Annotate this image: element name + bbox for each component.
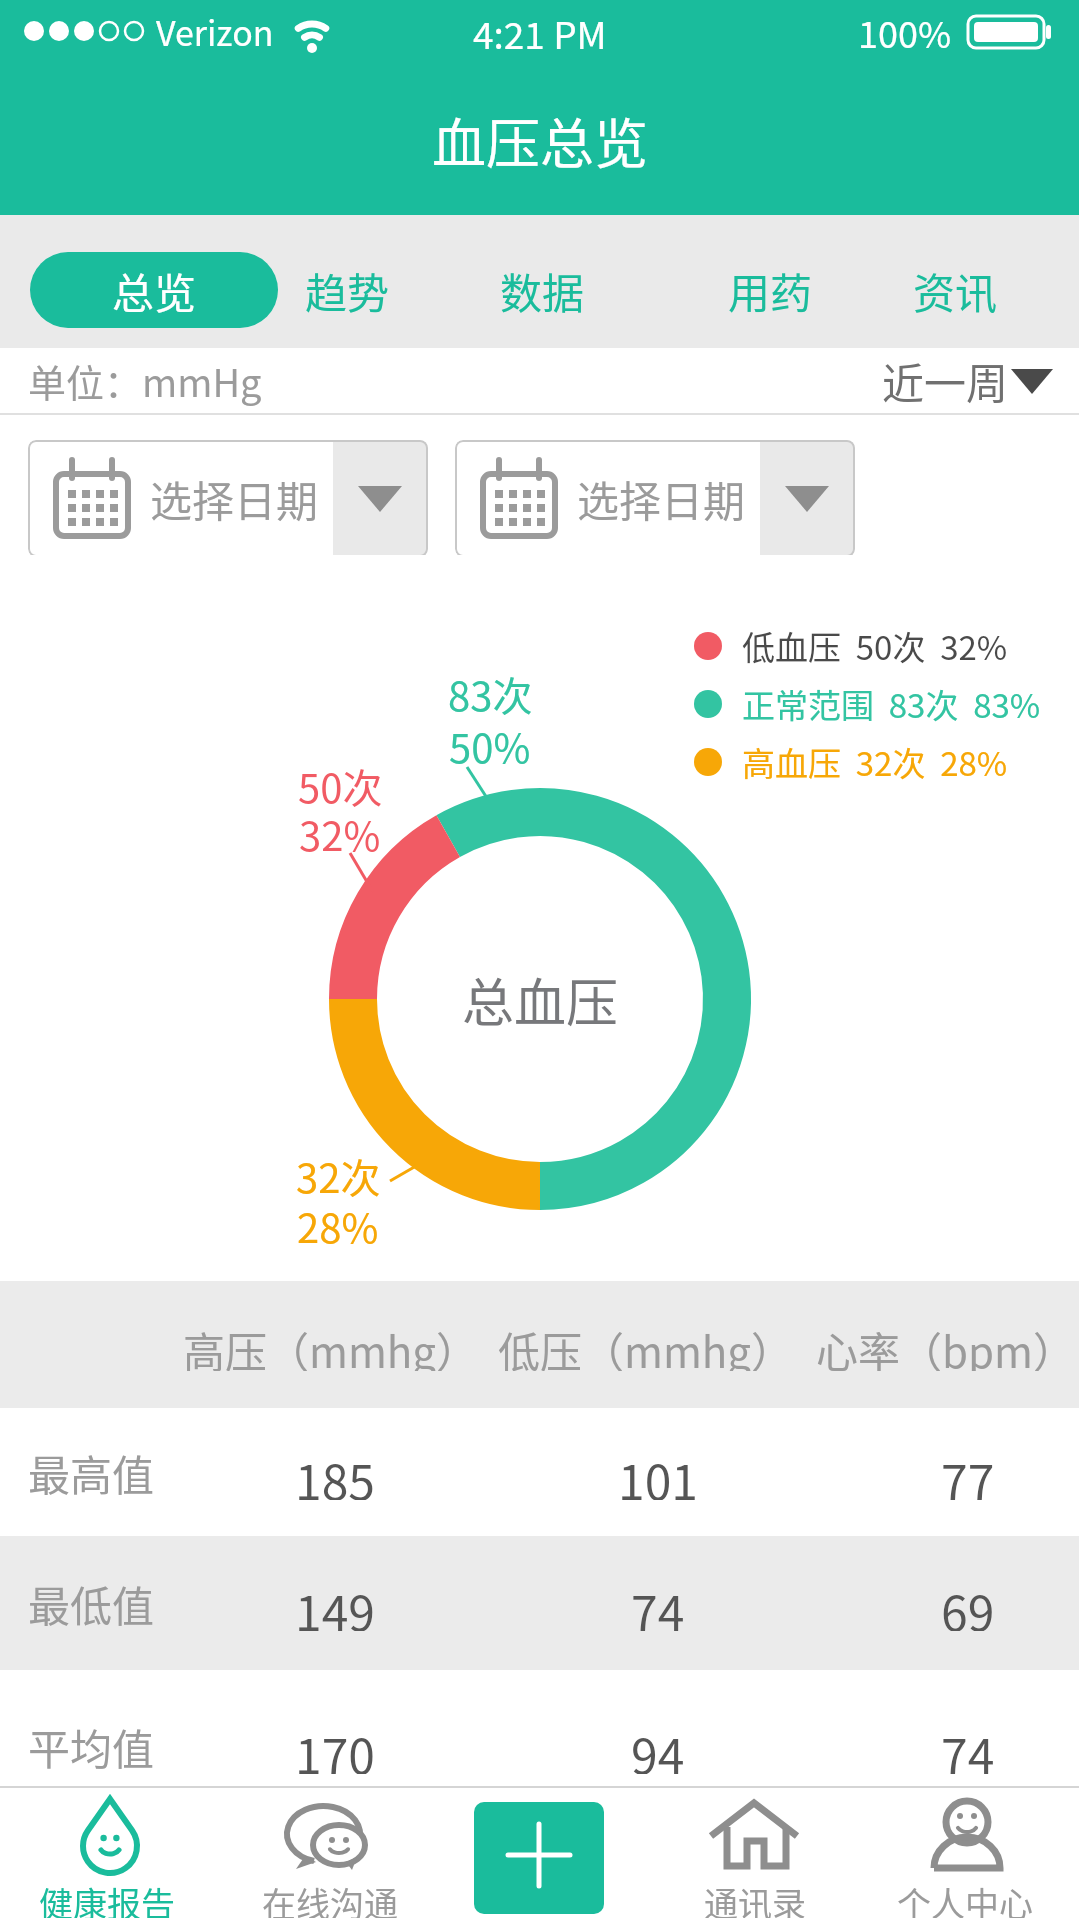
staticText: 在线沟通 [262,1878,398,1918]
staticText: 总血压 [462,962,619,1037]
staticText: 69 [941,1575,995,1631]
staticText: 最高值 [28,1442,155,1503]
staticText: 74 [631,1575,685,1631]
button[interactable]: 健康报告 [32,1878,182,1918]
staticText: 平均值 [28,1716,155,1777]
staticText: 个人中心 [897,1878,1033,1918]
staticText: 94 [631,1718,685,1774]
staticText: 83次 [448,665,533,717]
staticText: 149 [295,1575,375,1631]
button[interactable]: 趋势 [277,252,417,328]
button[interactable]: 资讯 [885,252,1025,328]
button[interactable]: 近一周 [860,348,1055,413]
staticText: 50% [449,717,531,769]
staticText: 77 [941,1444,995,1500]
staticText: 趋势 [305,260,390,321]
staticText: 185 [295,1444,375,1500]
button[interactable]: 选择日期 [455,440,855,557]
staticText: 选择日期 [577,468,746,529]
staticText: 最低值 [28,1573,155,1634]
staticText: 高血压 32次 28% [742,738,1008,786]
button[interactable]: 选择日期 [28,440,428,557]
staticText: 用药 [728,260,813,321]
staticText: 心率（bpm） [816,1319,1075,1371]
button[interactable]: 在线沟通 [255,1878,405,1918]
button[interactable]: 用药 [700,252,840,328]
staticText: 32次 [296,1147,381,1199]
button[interactable]: 总览 [30,252,278,328]
staticText: 总览 [112,260,197,321]
staticText: 血压总览 [432,101,648,179]
button[interactable]: 通讯录 [698,1878,812,1918]
staticText: Verizon [156,7,274,56]
staticText: 数据 [500,260,585,321]
staticText: 100% [858,6,952,56]
staticText: 50次 [298,757,383,809]
staticText: 健康报告 [39,1878,175,1918]
staticText: 资讯 [913,260,998,321]
staticText: 高压（mmhg） [183,1319,478,1371]
staticText: 低血压 50次 32% [742,622,1008,670]
staticText: 通讯录 [704,1878,806,1918]
staticText: 28% [297,1197,379,1249]
staticText: 正常范围 83次 83% [742,680,1041,728]
staticText: 单位：mmHg [28,353,262,408]
staticText: 低压（mmhg） [498,1319,793,1371]
staticText: 101 [618,1444,698,1500]
staticText: 74 [941,1718,995,1774]
button[interactable] [474,1802,604,1914]
button[interactable]: 个人中心 [890,1878,1040,1918]
staticText: 4:21 PM [473,6,607,56]
staticText: 近一周 [882,350,1009,411]
staticText: 170 [295,1718,375,1774]
button[interactable]: 数据 [472,252,612,328]
staticText: 32% [299,805,381,857]
staticText: 选择日期 [150,468,319,529]
